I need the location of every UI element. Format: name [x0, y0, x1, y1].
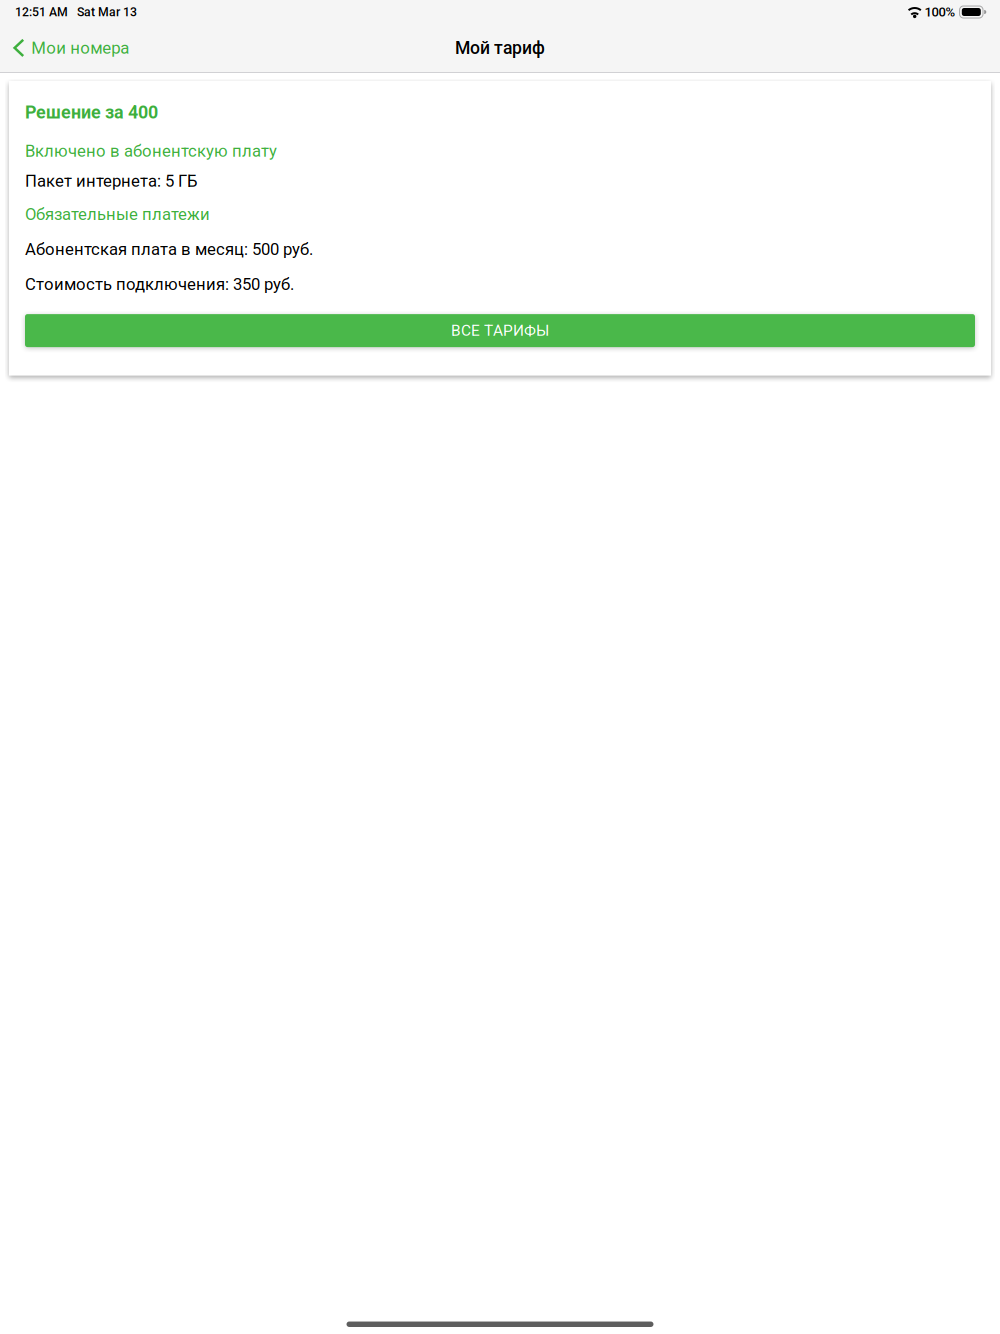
- staticText: Мой тариф: [455, 38, 545, 58]
- staticText: Включено в абонентскую плату: [25, 141, 277, 161]
- staticText: ВСЕ ТАРИФЫ: [451, 322, 549, 340]
- staticText: 100%: [925, 4, 956, 20]
- staticText: Стоимость подключения: 350 руб.: [25, 275, 294, 294]
- staticText: Обязательные платежи: [25, 204, 210, 224]
- staticText: Решение за 400: [25, 102, 158, 123]
- staticText: Sat Mar 13: [77, 5, 137, 19]
- staticText: Пакет интернета: 5 ГБ: [25, 171, 198, 191]
- staticText: Абонентская плата в месяц: 500 руб.: [25, 239, 313, 259]
- button[interactable]: Назад: Мои номера: [0, 31, 141, 65]
- staticText: Мои номера: [31, 38, 129, 58]
- button[interactable]: ВСЕ ТАРИФЫ: [25, 314, 975, 347]
- staticText: 12:51 AM: [15, 5, 68, 19]
